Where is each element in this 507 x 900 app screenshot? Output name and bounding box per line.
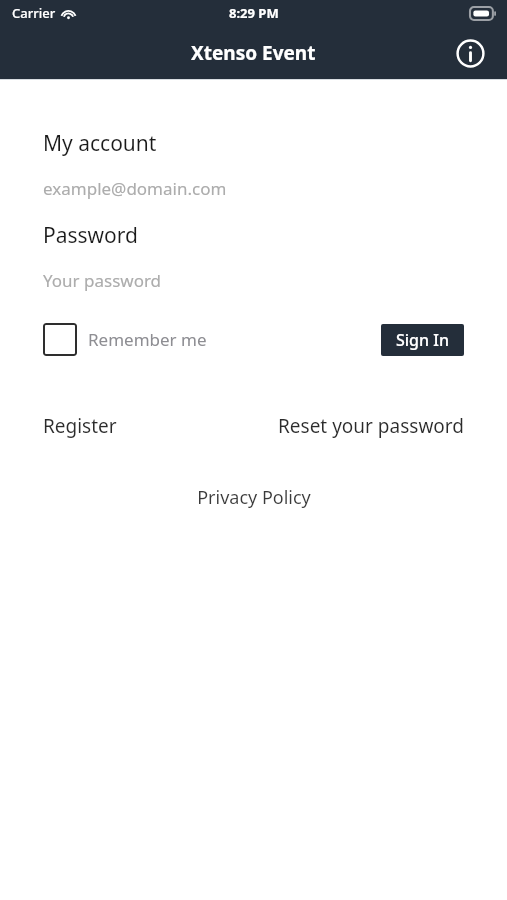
button[interactable]: Your password (43, 269, 464, 292)
button[interactable]: Remember me (43, 323, 207, 356)
staticText: Privacy Policy (197, 485, 311, 510)
staticText: Reset your password (278, 413, 464, 439)
button[interactable]: Privacy Policy (197, 485, 311, 510)
staticText: My account (43, 129, 157, 158)
staticText: Sign In (396, 329, 449, 351)
staticText: Your password (43, 269, 162, 292)
button[interactable]: Reset your password (278, 413, 464, 439)
staticText: 8:29 PM (229, 4, 279, 22)
staticText: Xtenso Event (191, 40, 316, 66)
staticText: Password (43, 221, 138, 250)
button[interactable]: Information (454, 37, 486, 69)
button[interactable]: example@domain.com (43, 177, 464, 200)
staticText: Register (43, 413, 117, 439)
button[interactable]: Sign In (381, 324, 464, 356)
button[interactable]: Register (43, 413, 117, 439)
staticText: Carrier (12, 4, 56, 22)
staticText: Remember me (88, 328, 207, 351)
staticText: example@domain.com (43, 177, 227, 200)
